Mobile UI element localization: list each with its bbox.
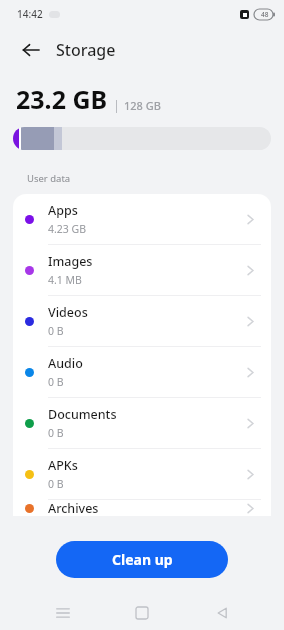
staticText: Videos [48,304,88,321]
staticText: Documents [48,406,117,423]
staticText: Archives [48,500,99,516]
staticText: Storage [56,39,116,61]
staticText: APKs [48,457,78,474]
staticText: Images [48,253,93,270]
staticText: 0 B [48,426,64,440]
button[interactable]: Audio [13,347,271,397]
button[interactable]: Images [13,245,271,295]
staticText: 0 B [48,477,64,491]
staticText: 14:42 [17,7,43,21]
button[interactable]: Documents [13,398,271,448]
staticText: Audio [48,355,83,372]
staticText: 4.23 GB [48,222,87,236]
button[interactable]: Back [205,596,239,630]
button[interactable]: Apps [13,194,271,244]
staticText: 128 GB [124,98,161,113]
button[interactable]: Recents [46,596,80,630]
button[interactable]: Clean up [56,541,228,578]
button[interactable]: Archives [13,500,271,516]
button[interactable]: Back [14,33,48,67]
button[interactable]: APKs [13,449,271,499]
staticText: Clean up [112,550,173,569]
staticText: Apps [48,202,78,219]
button[interactable]: Home [125,596,159,630]
staticText: 23.2 GB [16,82,108,116]
staticText: User data [27,172,71,185]
staticText: 0 B [48,375,64,389]
staticText: 48 [261,10,269,19]
staticText: 4.1 MB [48,273,82,287]
button[interactable]: Videos [13,296,271,346]
staticText: 0 B [48,324,64,338]
